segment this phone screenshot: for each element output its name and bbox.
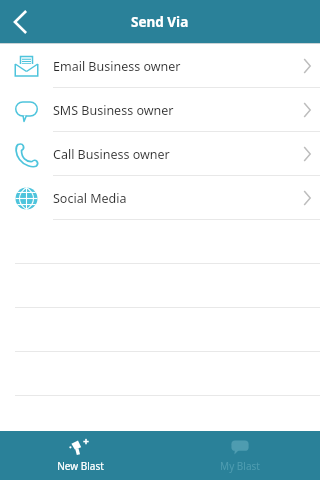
staticText: Send Via <box>131 13 189 31</box>
staticText: Call Business owner <box>53 146 294 163</box>
staticText: Email Business owner <box>53 58 294 75</box>
staticText: Social Media <box>53 190 294 207</box>
button[interactable]: Email Business owner <box>0 44 320 88</box>
staticText: New Blast <box>57 459 104 473</box>
staticText: My Blast <box>220 459 260 473</box>
button[interactable]: SMS Business owner <box>0 88 320 132</box>
staticText: SMS Business owner <box>53 102 294 119</box>
button[interactable]: Back <box>0 0 42 43</box>
button[interactable]: Call Business owner <box>0 132 320 176</box>
button[interactable]: Social Media <box>0 176 320 220</box>
button[interactable]: New Blast <box>0 431 160 480</box>
button[interactable]: My Blast <box>160 431 320 480</box>
